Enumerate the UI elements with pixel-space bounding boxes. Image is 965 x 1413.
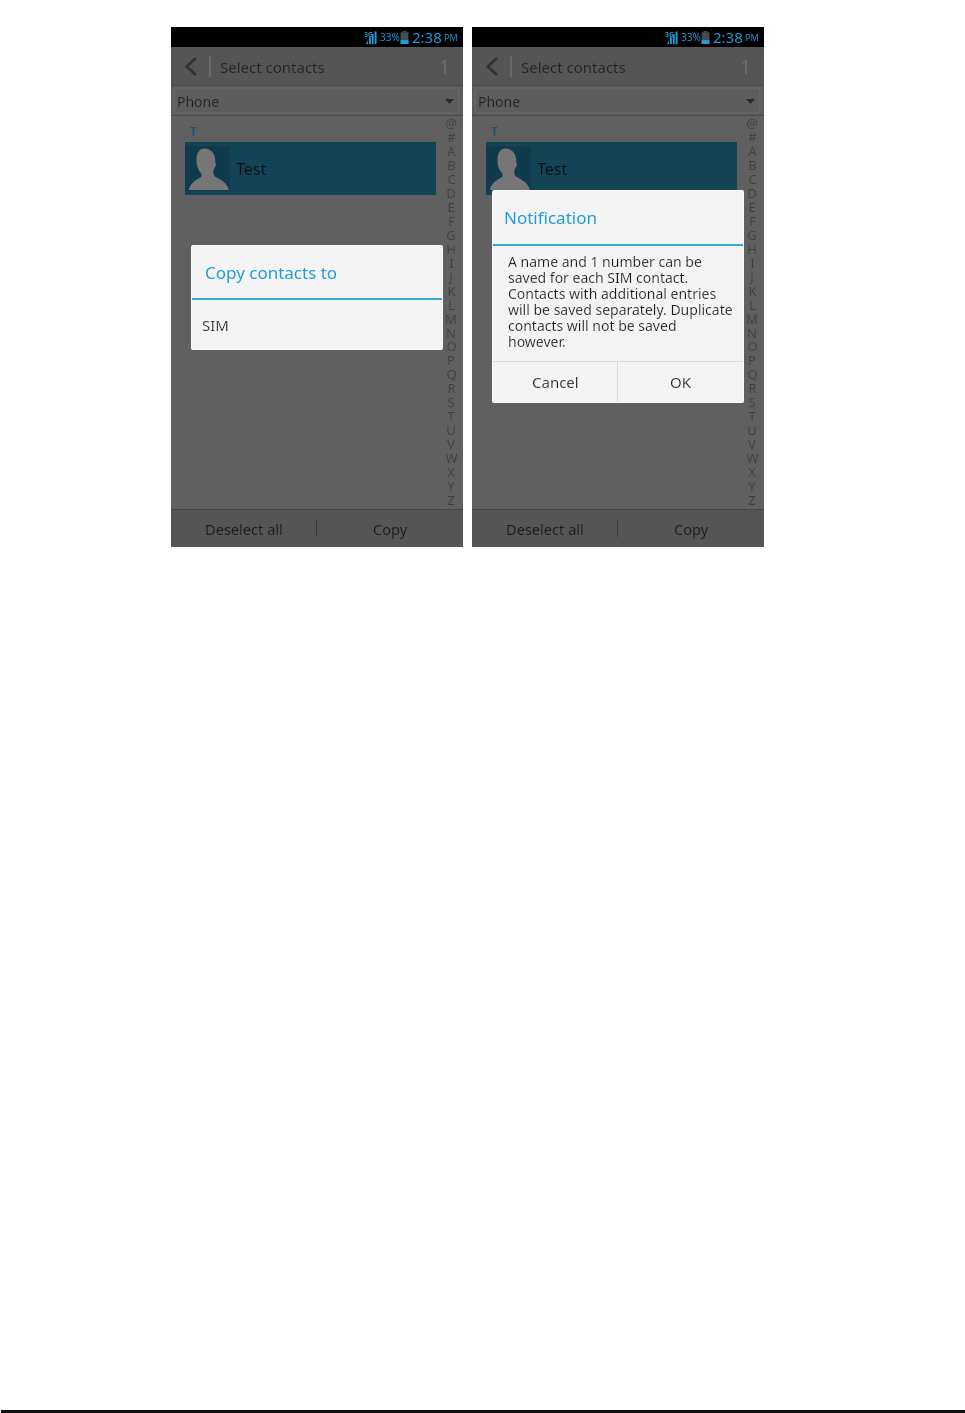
staticText: O — [747, 337, 758, 355]
staticText: L — [448, 296, 455, 314]
staticText: Q — [446, 365, 457, 383]
staticText: W — [445, 449, 458, 467]
staticText: G — [446, 226, 456, 244]
staticText: Select contacts — [521, 57, 626, 77]
staticText: J — [449, 268, 453, 286]
button[interactable]: Deselect all — [472, 510, 617, 547]
button[interactable]: Test — [486, 142, 737, 195]
staticText: H — [446, 240, 456, 258]
staticText: PM — [444, 31, 458, 43]
staticText: Z — [748, 491, 756, 509]
staticText: Test — [236, 158, 267, 180]
staticText: Phone — [478, 92, 521, 111]
staticText: H — [747, 240, 757, 258]
staticText: C — [447, 170, 456, 188]
staticText: K — [447, 282, 456, 300]
button[interactable]: Phone — [472, 86, 764, 116]
staticText: # — [748, 128, 757, 146]
staticText: PM — [745, 31, 759, 43]
staticText: G — [747, 226, 757, 244]
button[interactable]: Copy — [317, 510, 463, 547]
staticText: Cancel — [532, 372, 579, 392]
staticText: O — [446, 337, 457, 355]
staticText: 1 — [439, 54, 450, 80]
staticText: K — [748, 282, 757, 300]
staticText: C — [748, 170, 757, 188]
staticText: @ — [445, 114, 457, 132]
staticText: Test — [537, 158, 568, 180]
staticText: E — [447, 198, 455, 216]
staticText: P — [748, 351, 756, 369]
staticText: Deselect all — [506, 519, 584, 539]
staticText: 33% — [380, 30, 400, 44]
staticText: Copy — [674, 519, 709, 539]
staticText: W — [746, 449, 759, 467]
staticText: # — [447, 128, 456, 146]
staticText: Y — [748, 477, 756, 495]
button[interactable]: Cancel — [493, 362, 617, 402]
staticText: D — [747, 184, 757, 202]
staticText: 33% — [681, 30, 701, 44]
staticText: E — [748, 198, 756, 216]
staticText: 3G — [364, 30, 374, 40]
staticText: SIM — [202, 315, 229, 335]
staticText: B — [447, 156, 456, 174]
staticText: X — [447, 463, 455, 481]
staticText: A name and 1 number can be saved for eac… — [508, 252, 735, 351]
staticText: 2:38 — [412, 27, 442, 47]
staticText: I — [449, 254, 454, 272]
staticText: I — [750, 254, 755, 272]
staticText: R — [447, 379, 456, 397]
staticText: V — [748, 435, 756, 453]
staticText: N — [446, 324, 456, 342]
staticText: Phone — [177, 92, 220, 111]
staticText: Select contacts — [220, 57, 325, 77]
staticText: F — [448, 212, 455, 230]
staticText: M — [746, 310, 758, 328]
staticText: D — [446, 184, 456, 202]
staticText: 3G — [665, 30, 675, 40]
button[interactable]: Copy — [618, 510, 764, 547]
staticText: M — [445, 310, 457, 328]
staticText: S — [447, 393, 455, 411]
staticText: N — [747, 324, 757, 342]
staticText: R — [748, 379, 757, 397]
staticText: 2:38 — [713, 27, 743, 47]
staticText: T — [748, 407, 756, 425]
staticText: U — [747, 421, 757, 439]
staticText: X — [748, 463, 756, 481]
staticText: B — [748, 156, 757, 174]
staticText: U — [446, 421, 456, 439]
staticText: Deselect all — [205, 519, 283, 539]
staticText: P — [447, 351, 455, 369]
staticText: J — [750, 268, 754, 286]
button[interactable]: Test — [185, 142, 436, 195]
button[interactable]: Deselect all — [171, 510, 316, 547]
button[interactable]: SIM — [192, 300, 442, 349]
button[interactable]: Back — [472, 47, 510, 86]
staticText: Notification — [504, 206, 597, 229]
staticText: Z — [447, 491, 455, 509]
staticText: OK — [670, 372, 692, 392]
staticText: L — [749, 296, 756, 314]
staticText: Copy contacts to — [205, 261, 338, 284]
staticText: S — [748, 393, 756, 411]
staticText: A — [748, 142, 757, 160]
staticText: @ — [746, 114, 758, 132]
button[interactable]: Phone — [171, 86, 463, 116]
staticText: V — [447, 435, 455, 453]
button[interactable]: Back — [171, 47, 209, 86]
staticText: 1 — [740, 54, 751, 80]
staticText: Copy — [373, 519, 408, 539]
staticText: F — [749, 212, 756, 230]
staticText: Y — [447, 477, 455, 495]
button[interactable]: OK — [618, 362, 743, 402]
staticText: A — [447, 142, 456, 160]
staticText: T — [190, 123, 197, 139]
staticText: Q — [747, 365, 758, 383]
staticText: T — [447, 407, 455, 425]
staticText: T — [491, 123, 498, 139]
